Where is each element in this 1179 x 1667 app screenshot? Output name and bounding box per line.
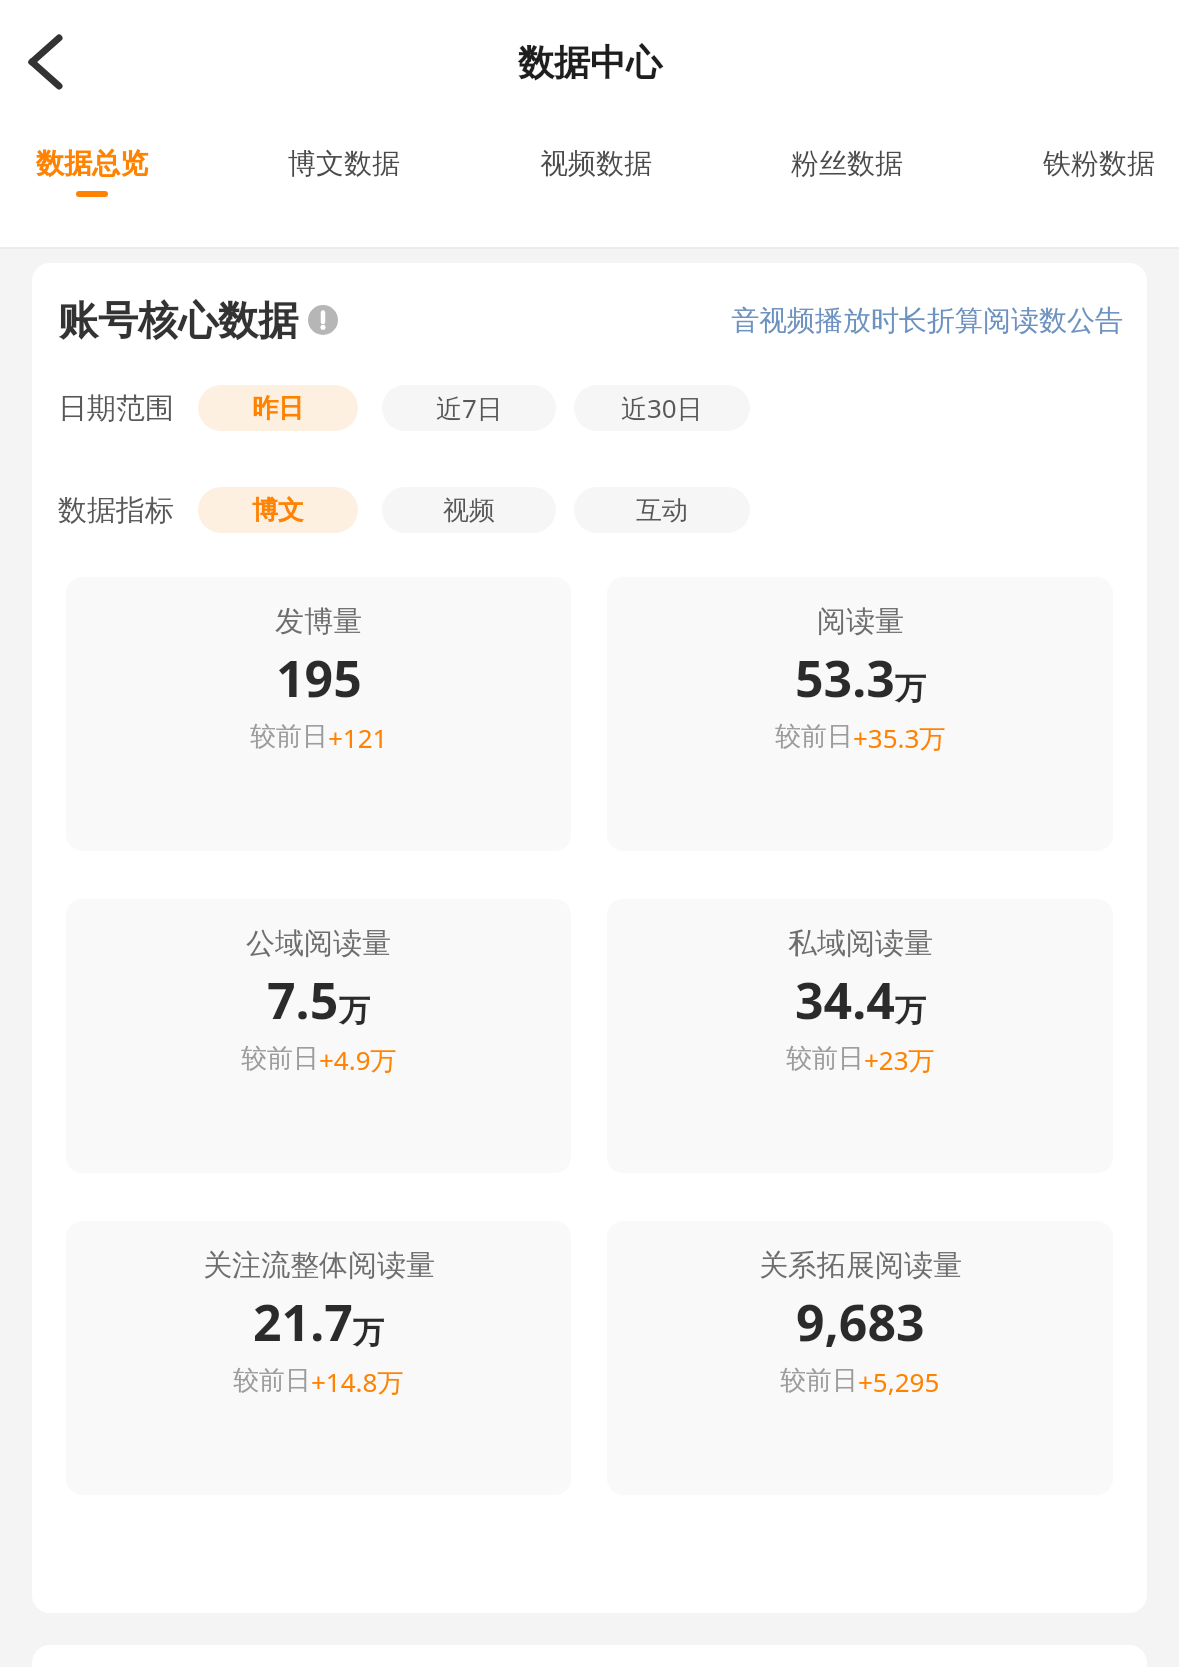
staticText: 视频 [443,494,495,527]
button[interactable]: 私域阅读量 [607,899,1113,1173]
staticText: 铁粉数据 [1043,146,1155,181]
staticText: +121 [328,720,388,755]
staticText: 音视频播放时长折算阅读数公告 [731,303,1123,338]
button[interactable]: 互动 [574,487,750,533]
staticText: 日期范围 [58,390,174,427]
button[interactable]: 阅读量 [607,577,1113,851]
button[interactable]: Back [0,17,90,107]
staticText: 数据中心 [518,40,662,85]
button[interactable]: Info [308,305,338,335]
staticText: 较前日 [786,1042,864,1075]
button[interactable]: 关注流整体阅读量 [66,1221,571,1495]
staticText: 阅读量 [817,603,904,640]
staticText: 7.5 [267,966,339,1034]
button[interactable]: 粉丝数据 [791,146,903,197]
button[interactable]: 关系拓展阅读量 [607,1221,1113,1495]
staticText: 53.3 [795,644,895,712]
button[interactable]: 音视频播放时长折算阅读数公告 [731,303,1123,338]
staticText: 关系拓展阅读量 [759,1247,962,1284]
button[interactable]: 发博量 [66,577,571,851]
staticText: 发博量 [275,603,362,640]
staticText: +14.8万 [311,1364,404,1400]
button[interactable]: 铁粉数据 [1043,146,1155,197]
staticText: 博文数据 [288,146,400,181]
staticText: 较前日 [233,1364,311,1397]
staticText: 万 [353,1313,384,1352]
button[interactable]: 博文数据 [288,146,400,197]
staticText: 万 [895,991,926,1030]
staticText: +5,295 [858,1364,940,1399]
staticText: 视频数据 [540,146,652,181]
button[interactable]: 公域阅读量 [66,899,571,1173]
button[interactable]: 数据总览 [36,146,148,197]
button[interactable]: 博文 [198,487,358,533]
staticText: 较前日 [780,1364,858,1397]
staticText: 较前日 [775,720,853,753]
staticText: 公域阅读量 [246,925,391,962]
staticText: +23万 [864,1042,935,1078]
staticText: 账号核心数据 [58,295,298,345]
staticText: 互动 [636,494,688,527]
staticText: 9,683 [796,1288,925,1356]
staticText: 数据指标 [58,492,174,529]
staticText: 较前日 [250,720,328,753]
staticText: 博文 [252,494,304,527]
staticText: 万 [339,991,370,1030]
staticText: 较前日 [241,1042,319,1075]
staticText: 195 [276,644,362,712]
button[interactable]: 视频 [382,487,556,533]
button[interactable]: 近30日 [574,385,750,431]
button[interactable]: 视频数据 [540,146,652,197]
staticText: 粉丝数据 [791,146,903,181]
staticText: +4.9万 [319,1042,397,1078]
staticText: 21.7 [253,1288,353,1356]
staticText: 近7日 [436,390,503,426]
staticText: +35.3万 [853,720,946,756]
staticText: 34.4 [795,966,895,1034]
staticText: 万 [895,669,926,708]
staticText: 近30日 [621,390,703,426]
staticText: 昨日 [252,392,304,425]
button[interactable]: 昨日 [198,385,358,431]
staticText: 关注流整体阅读量 [203,1247,435,1284]
staticText: 私域阅读量 [788,925,933,962]
staticText: 数据总览 [36,146,148,181]
button[interactable]: 近7日 [382,385,556,431]
